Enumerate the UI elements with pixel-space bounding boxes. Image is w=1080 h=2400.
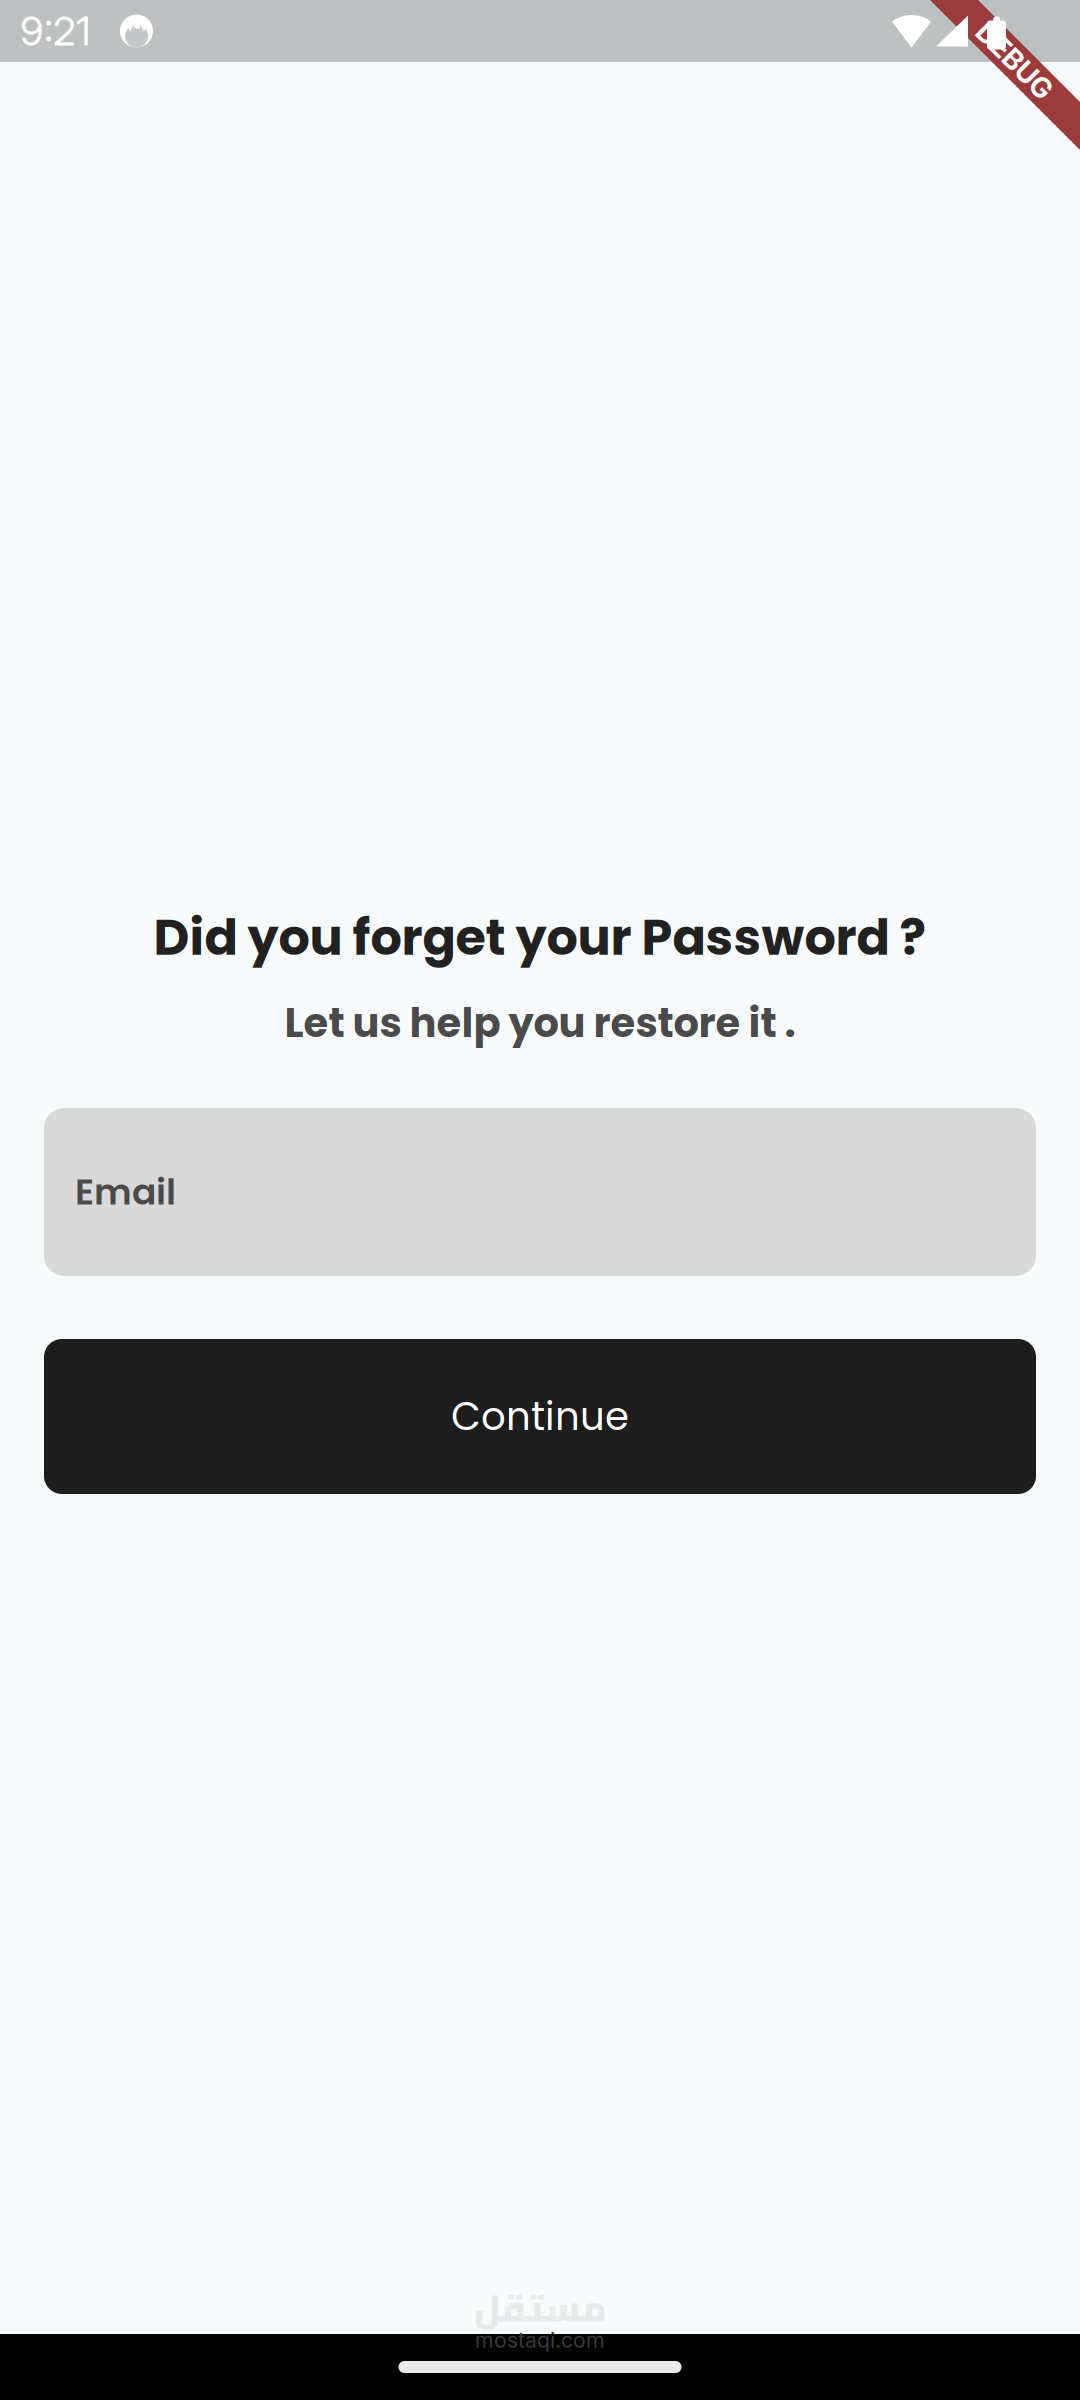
staticText: مستقل	[473, 2274, 606, 2342]
staticText: Continue	[451, 1389, 629, 1443]
staticText: DEBUG	[964, 50, 1060, 84]
staticText: Email	[75, 1167, 176, 1217]
button[interactable]: Email	[44, 1108, 1036, 1276]
staticText: mostaqi.com	[475, 2327, 605, 2353]
staticText: Let us help you restore it .	[284, 995, 795, 1051]
staticText: Did you forget your Password ?	[153, 903, 926, 972]
button[interactable]: Continue	[44, 1339, 1036, 1494]
staticText: 9:21	[20, 7, 91, 55]
